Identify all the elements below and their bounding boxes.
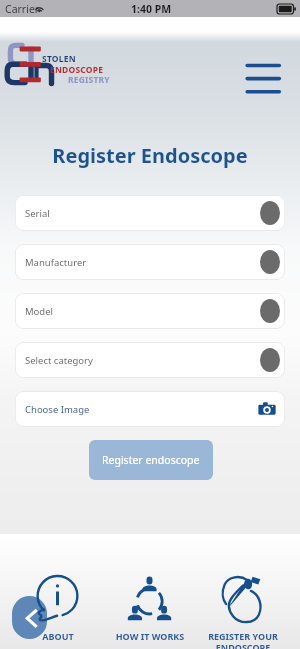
staticText: REGISTER YOUR ENDOSCOPE bbox=[195, 630, 291, 649]
button[interactable]: ABOUT bbox=[10, 570, 106, 649]
button[interactable]: Choose Image bbox=[15, 391, 285, 427]
staticText: STOLEN bbox=[42, 53, 76, 65]
staticText: Manufacturer bbox=[25, 256, 87, 269]
staticText: REGISTRY bbox=[68, 74, 110, 86]
staticText: Select category bbox=[25, 354, 93, 367]
staticText: Carrier bbox=[5, 2, 40, 16]
button[interactable]: Register endoscope bbox=[89, 440, 213, 480]
staticText: Register endoscope bbox=[102, 453, 200, 467]
staticText: ENDOSCOPE bbox=[50, 64, 104, 76]
button[interactable]: Stolen Endoscope Registry bbox=[0, 38, 120, 90]
button[interactable]: HOW IT WORKS bbox=[102, 568, 198, 647]
staticText: ABOUT bbox=[10, 630, 106, 642]
button[interactable]: Back bbox=[12, 596, 47, 639]
staticText: HOW IT WORKS bbox=[102, 630, 198, 642]
staticText: Register Endoscope bbox=[0, 142, 300, 169]
staticText: 1:40 PM bbox=[131, 2, 172, 16]
button[interactable]: Menu bbox=[243, 59, 283, 98]
staticText: Model bbox=[25, 305, 54, 318]
button[interactable]: Select category bbox=[15, 342, 285, 378]
button[interactable]: Model bbox=[15, 293, 285, 329]
button[interactable]: REGISTER YOUR ENDOSCOPE bbox=[195, 569, 291, 648]
staticText: Choose Image bbox=[25, 403, 90, 416]
button[interactable]: Serial bbox=[15, 195, 285, 231]
staticText: Serial bbox=[25, 207, 50, 220]
button[interactable]: Manufacturer bbox=[15, 244, 285, 280]
